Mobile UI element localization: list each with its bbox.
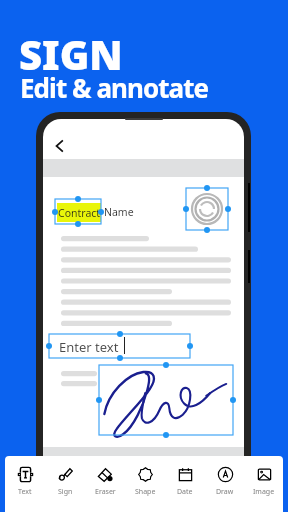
button[interactable]: Shape	[125, 456, 165, 512]
button[interactable]: Sign	[45, 456, 85, 512]
staticText: Eraser	[95, 487, 116, 497]
staticText: SIGN	[19, 27, 123, 81]
staticText: Shape	[135, 487, 156, 497]
staticText: Name	[104, 205, 134, 219]
button[interactable]: Text	[5, 456, 45, 512]
staticText: Draw	[216, 487, 234, 497]
staticText: Enter text	[59, 338, 119, 356]
button[interactable]: Date	[165, 456, 205, 512]
button[interactable]: Eraser	[85, 456, 125, 512]
staticText: Image	[253, 487, 275, 497]
staticText: Edit & annotate	[20, 70, 209, 105]
staticText: Text	[18, 487, 32, 497]
staticText: Date	[177, 487, 193, 497]
button[interactable]: Back	[49, 135, 71, 157]
staticText: Sign	[58, 487, 73, 497]
button[interactable]: Image	[245, 456, 283, 512]
button[interactable]: Draw	[205, 456, 245, 512]
staticText: Contract	[58, 206, 101, 220]
